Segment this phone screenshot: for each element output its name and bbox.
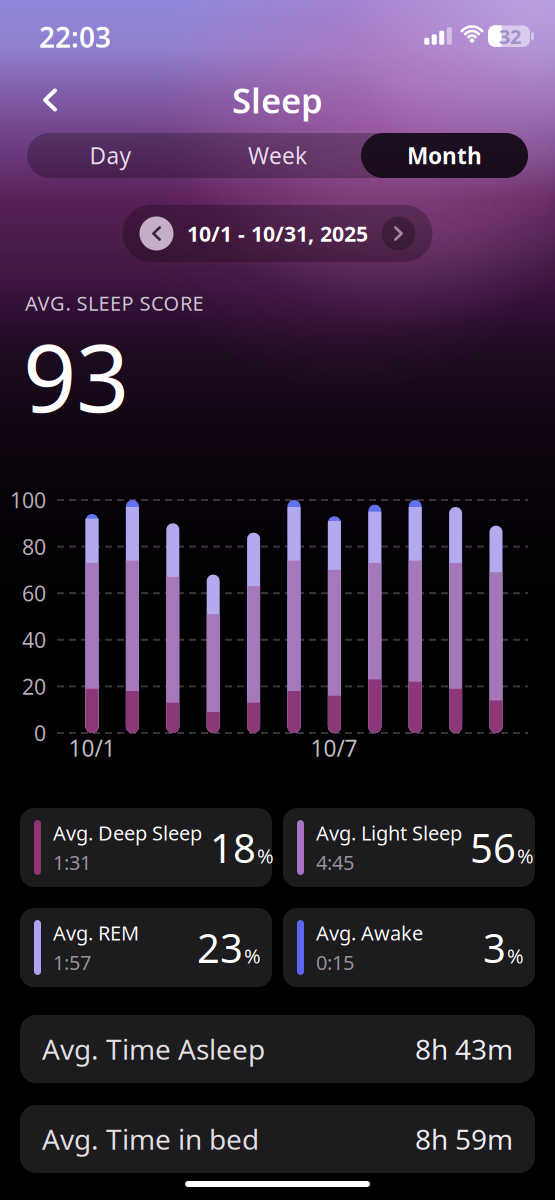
- staticText: Avg. Time in bed: [42, 1120, 259, 1158]
- staticText: %: [257, 842, 274, 869]
- staticText: 23: [197, 921, 243, 974]
- staticText: 40: [22, 626, 46, 654]
- button[interactable]: Day: [27, 133, 194, 178]
- staticText: Month: [407, 140, 482, 170]
- staticText: 80: [22, 532, 46, 561]
- staticText: AVG. SLEEP SCORE: [25, 290, 203, 316]
- staticText: 56: [470, 821, 516, 874]
- button[interactable]: Next month: [381, 216, 415, 250]
- staticText: 0:15: [316, 949, 354, 976]
- button[interactable]: Week: [194, 133, 361, 178]
- staticText: 8h 59m: [415, 1120, 513, 1158]
- staticText: 10/7: [310, 733, 357, 763]
- staticText: 1:31: [53, 849, 91, 876]
- staticText: 93: [23, 314, 129, 438]
- staticText: Avg. Time Asleep: [42, 1030, 265, 1068]
- staticText: Day: [89, 140, 131, 170]
- staticText: %: [517, 842, 534, 869]
- staticText: 100: [10, 486, 46, 514]
- staticText: 1:57: [53, 949, 91, 976]
- staticText: 18: [210, 821, 256, 874]
- staticText: 10/1 - 10/31, 2025: [187, 219, 368, 248]
- button[interactable]: Back: [28, 78, 72, 122]
- staticText: Week: [248, 140, 307, 170]
- staticText: %: [507, 942, 524, 969]
- staticText: Sleep: [232, 77, 323, 123]
- staticText: Avg. Awake: [316, 919, 423, 946]
- staticText: 32: [499, 23, 521, 50]
- button[interactable]: Month: [361, 133, 528, 178]
- staticText: 0: [34, 719, 46, 747]
- staticText: 4:45: [316, 849, 354, 876]
- staticText: 10/1: [68, 733, 115, 763]
- staticText: 60: [22, 579, 46, 607]
- staticText: Avg. Light Sleep: [316, 819, 462, 846]
- staticText: 20: [22, 672, 46, 700]
- staticText: %: [244, 942, 261, 969]
- button[interactable]: Previous month: [139, 216, 173, 250]
- staticText: Avg. Deep Sleep: [53, 819, 202, 846]
- staticText: 3: [483, 921, 506, 974]
- staticText: Avg. REM: [53, 919, 139, 946]
- staticText: 22:03: [39, 18, 111, 56]
- staticText: 8h 43m: [415, 1030, 513, 1068]
